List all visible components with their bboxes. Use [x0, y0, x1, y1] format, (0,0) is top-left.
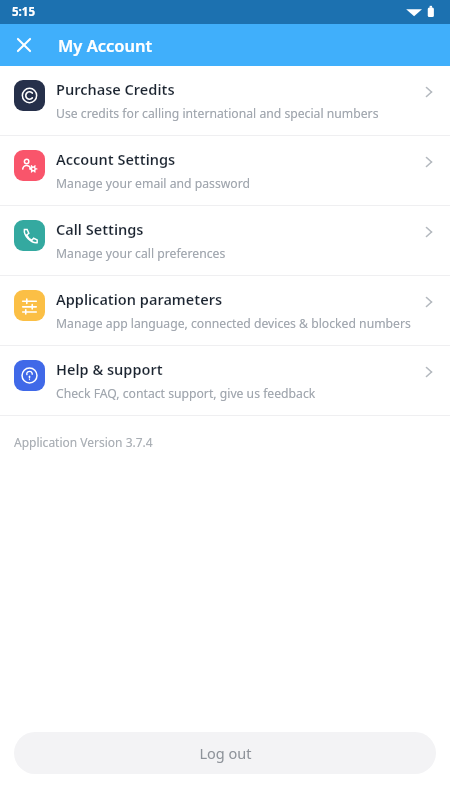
button[interactable]: Log out	[14, 732, 436, 774]
button[interactable]: Purchase Credits	[0, 66, 450, 135]
staticText: Application parameters	[56, 289, 223, 309]
staticText: Check FAQ, contact support, give us feed…	[56, 385, 316, 402]
staticText: Manage your email and password	[56, 175, 250, 192]
staticText: Account Settings	[56, 149, 176, 169]
button[interactable]: Application parameters	[0, 276, 450, 345]
staticText: Purchase Credits	[56, 79, 175, 99]
staticText: Use credits for calling international an…	[56, 105, 379, 122]
staticText: Log out	[199, 743, 252, 763]
button[interactable]: Help & support	[0, 346, 450, 415]
button[interactable]: Close	[8, 29, 40, 61]
staticText: 5:15	[12, 4, 35, 20]
staticText: Call Settings	[56, 219, 144, 239]
staticText: My Account	[58, 34, 153, 56]
staticText: Application Version 3.7.4	[14, 434, 153, 450]
staticText: Help & support	[56, 359, 163, 379]
button[interactable]: Call Settings	[0, 206, 450, 275]
staticText: Manage your call preferences	[56, 245, 226, 262]
button[interactable]: Account Settings	[0, 136, 450, 205]
staticText: Manage app language, connected devices &…	[56, 315, 411, 332]
